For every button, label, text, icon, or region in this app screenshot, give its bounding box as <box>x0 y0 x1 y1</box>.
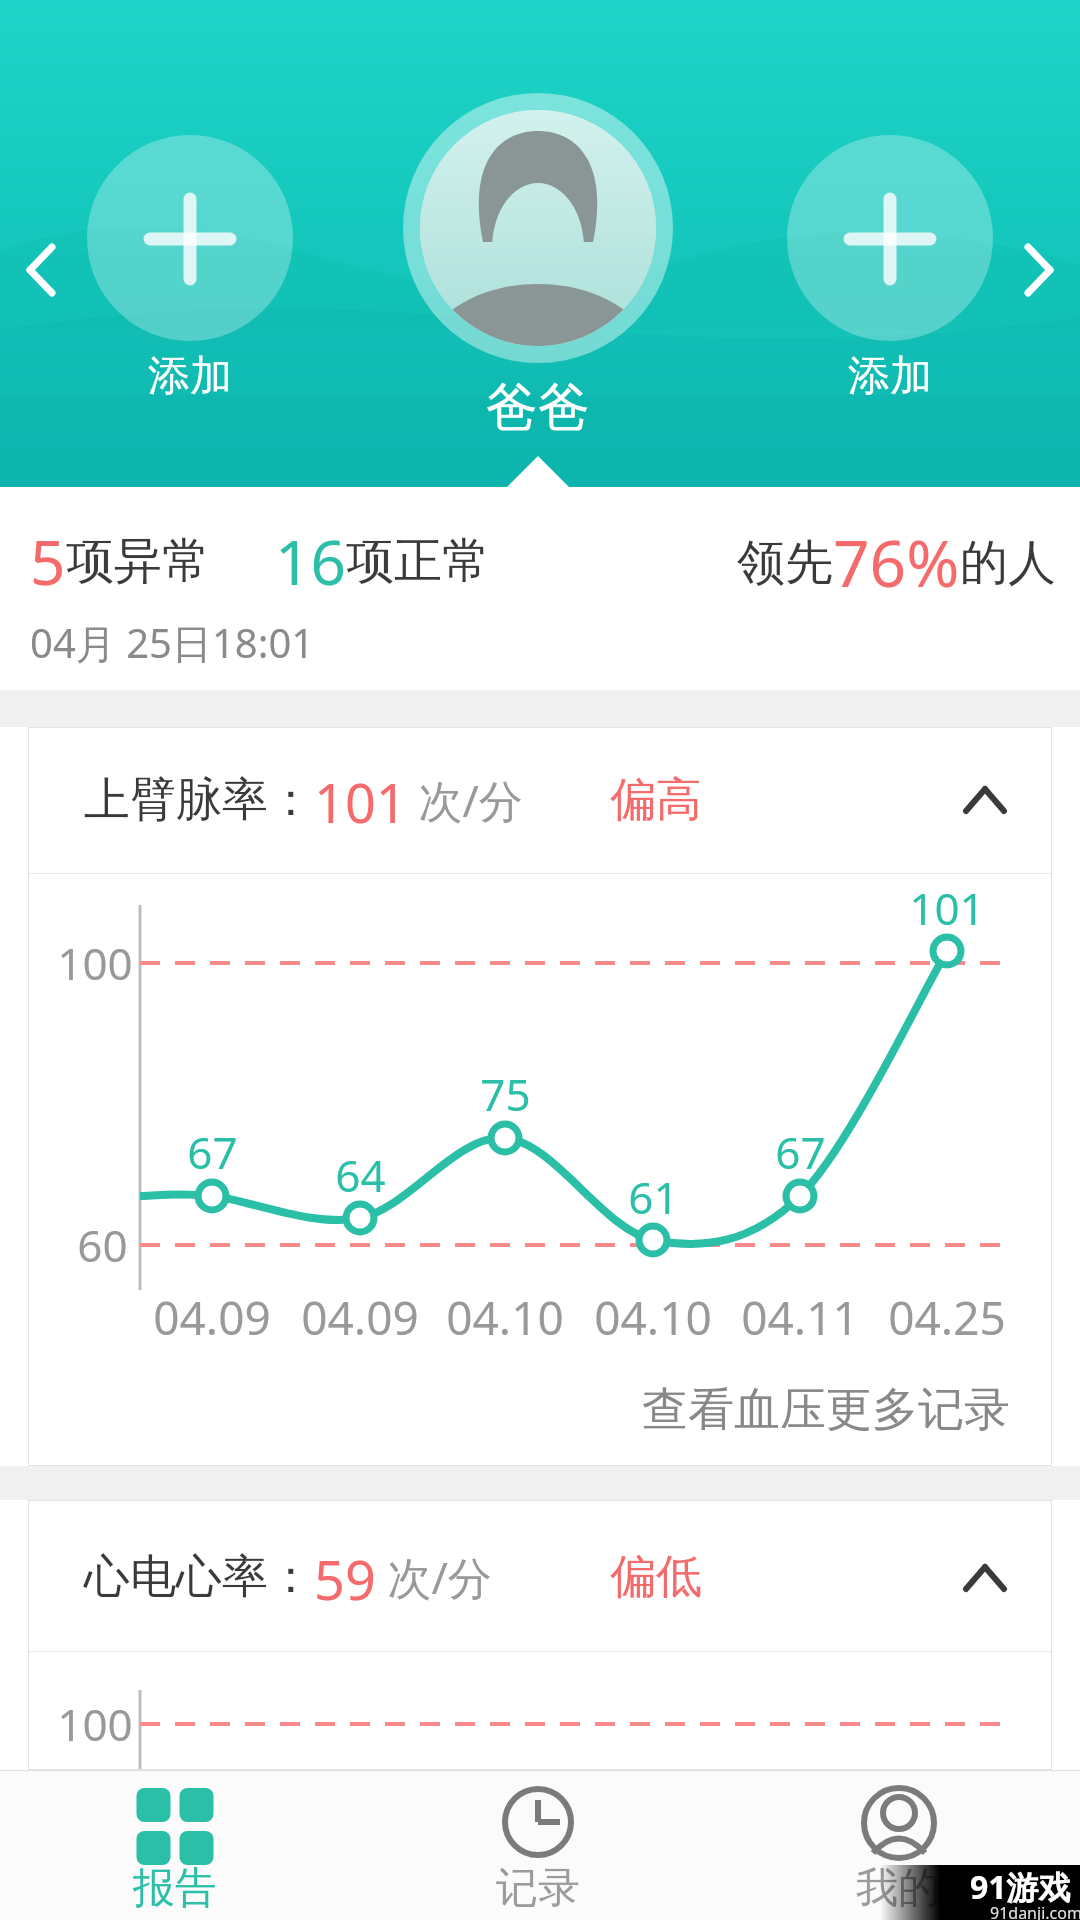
staticText: 04.11 <box>741 1286 859 1349</box>
button[interactable] <box>403 93 673 363</box>
staticText: 领先 <box>737 533 833 593</box>
staticText: 偏低 <box>610 1548 702 1606</box>
staticText: 101 <box>909 878 985 938</box>
staticText: 项异常 <box>66 531 210 591</box>
staticText: 91danji.com <box>990 1902 1080 1920</box>
staticText: 61 <box>628 1167 679 1227</box>
staticText: 60 <box>77 1215 128 1275</box>
staticText: 64 <box>335 1145 386 1205</box>
staticText: 5 <box>30 519 66 603</box>
staticText: 我的 <box>856 1862 940 1915</box>
staticText: 爸爸 <box>486 375 590 441</box>
staticText: 报告 <box>133 1862 217 1915</box>
button[interactable] <box>28 1500 1052 1651</box>
button[interactable]: 查看血压更多记录 <box>620 1379 1010 1441</box>
staticText: 67 <box>187 1122 238 1182</box>
staticText: 04月 25日18:01 <box>30 615 315 670</box>
button[interactable] <box>945 1538 1025 1618</box>
button[interactable] <box>87 135 293 341</box>
staticText: 偏高 <box>610 771 702 829</box>
button[interactable] <box>28 727 1052 873</box>
staticText: 04.10 <box>446 1286 564 1349</box>
staticText: 04.10 <box>594 1286 712 1349</box>
staticText: 59 <box>314 1542 376 1612</box>
staticText: 16 <box>275 519 346 603</box>
button[interactable]: 报告 <box>55 1770 295 1920</box>
button[interactable]: 我的 <box>778 1770 1018 1920</box>
staticText: 100 <box>57 933 133 993</box>
staticText: 上臂脉率： <box>84 771 314 829</box>
staticText: 100 <box>57 1694 133 1754</box>
staticText: 添加 <box>848 350 932 403</box>
staticText: 次/分 <box>376 1547 492 1607</box>
staticText: 67 <box>775 1122 826 1182</box>
staticText: 04.25 <box>888 1286 1006 1349</box>
staticText: 101 <box>314 765 407 835</box>
staticText: 04.09 <box>301 1286 419 1349</box>
button[interactable] <box>787 135 993 341</box>
staticText: 项正常 <box>346 531 490 591</box>
staticText: 记录 <box>496 1862 580 1915</box>
staticText: 76% <box>833 519 960 606</box>
button[interactable] <box>945 760 1025 840</box>
staticText: 的人 <box>960 533 1056 593</box>
button[interactable]: 记录 <box>418 1770 658 1920</box>
staticText: 04.09 <box>153 1286 271 1349</box>
staticText: 75 <box>480 1064 531 1124</box>
staticText: 添加 <box>148 350 232 403</box>
staticText: 查看血压更多记录 <box>642 1381 1010 1439</box>
staticText: 心电心率： <box>84 1548 314 1606</box>
staticText: 次/分 <box>407 770 523 830</box>
staticText: 91游戏 <box>970 1865 1071 1909</box>
